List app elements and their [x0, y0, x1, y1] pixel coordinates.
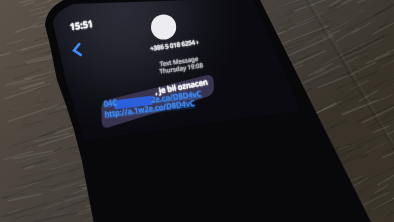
button[interactable]	[0, 0, 394, 222]
